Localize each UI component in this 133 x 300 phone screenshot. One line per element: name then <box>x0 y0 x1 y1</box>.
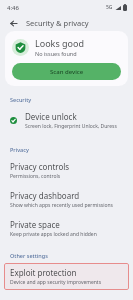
staticText: Security & privacy <box>26 18 89 28</box>
button[interactable]: Exploit protection <box>4 263 129 290</box>
button[interactable]: Back <box>6 16 20 30</box>
staticText: Exploit protection <box>10 267 77 278</box>
button[interactable]: Device unlock <box>4 107 129 134</box>
staticText: Device and app security improvements <box>10 279 102 286</box>
button[interactable]: Privacy dashboard <box>4 186 129 213</box>
staticText: Privacy dashboard <box>10 190 80 201</box>
button[interactable]: Scan device <box>12 63 121 80</box>
staticText: Other settings <box>10 252 48 259</box>
staticText: Keep private apps locked and hidden <box>10 231 97 238</box>
staticText: Device unlock <box>25 111 77 122</box>
staticText: Permissions, controls <box>10 173 61 180</box>
button[interactable]: Privacy controls <box>4 157 129 184</box>
staticText: Security <box>10 96 32 103</box>
staticText: Scan device <box>50 68 84 76</box>
staticText: Looks good <box>35 37 85 49</box>
staticText: No issues found <box>35 50 77 57</box>
staticText: Privacy controls <box>10 161 70 172</box>
button[interactable]: Private space <box>4 215 129 242</box>
staticText: Privacy <box>10 146 29 153</box>
staticText: Private space <box>10 219 60 230</box>
staticText: Screen lock, Fingerprint Unlock, Duress … <box>25 123 123 130</box>
staticText: 4:46 <box>7 4 19 12</box>
staticText: Show which apps recently used permission… <box>10 202 113 209</box>
staticText: 5G <box>106 4 113 11</box>
